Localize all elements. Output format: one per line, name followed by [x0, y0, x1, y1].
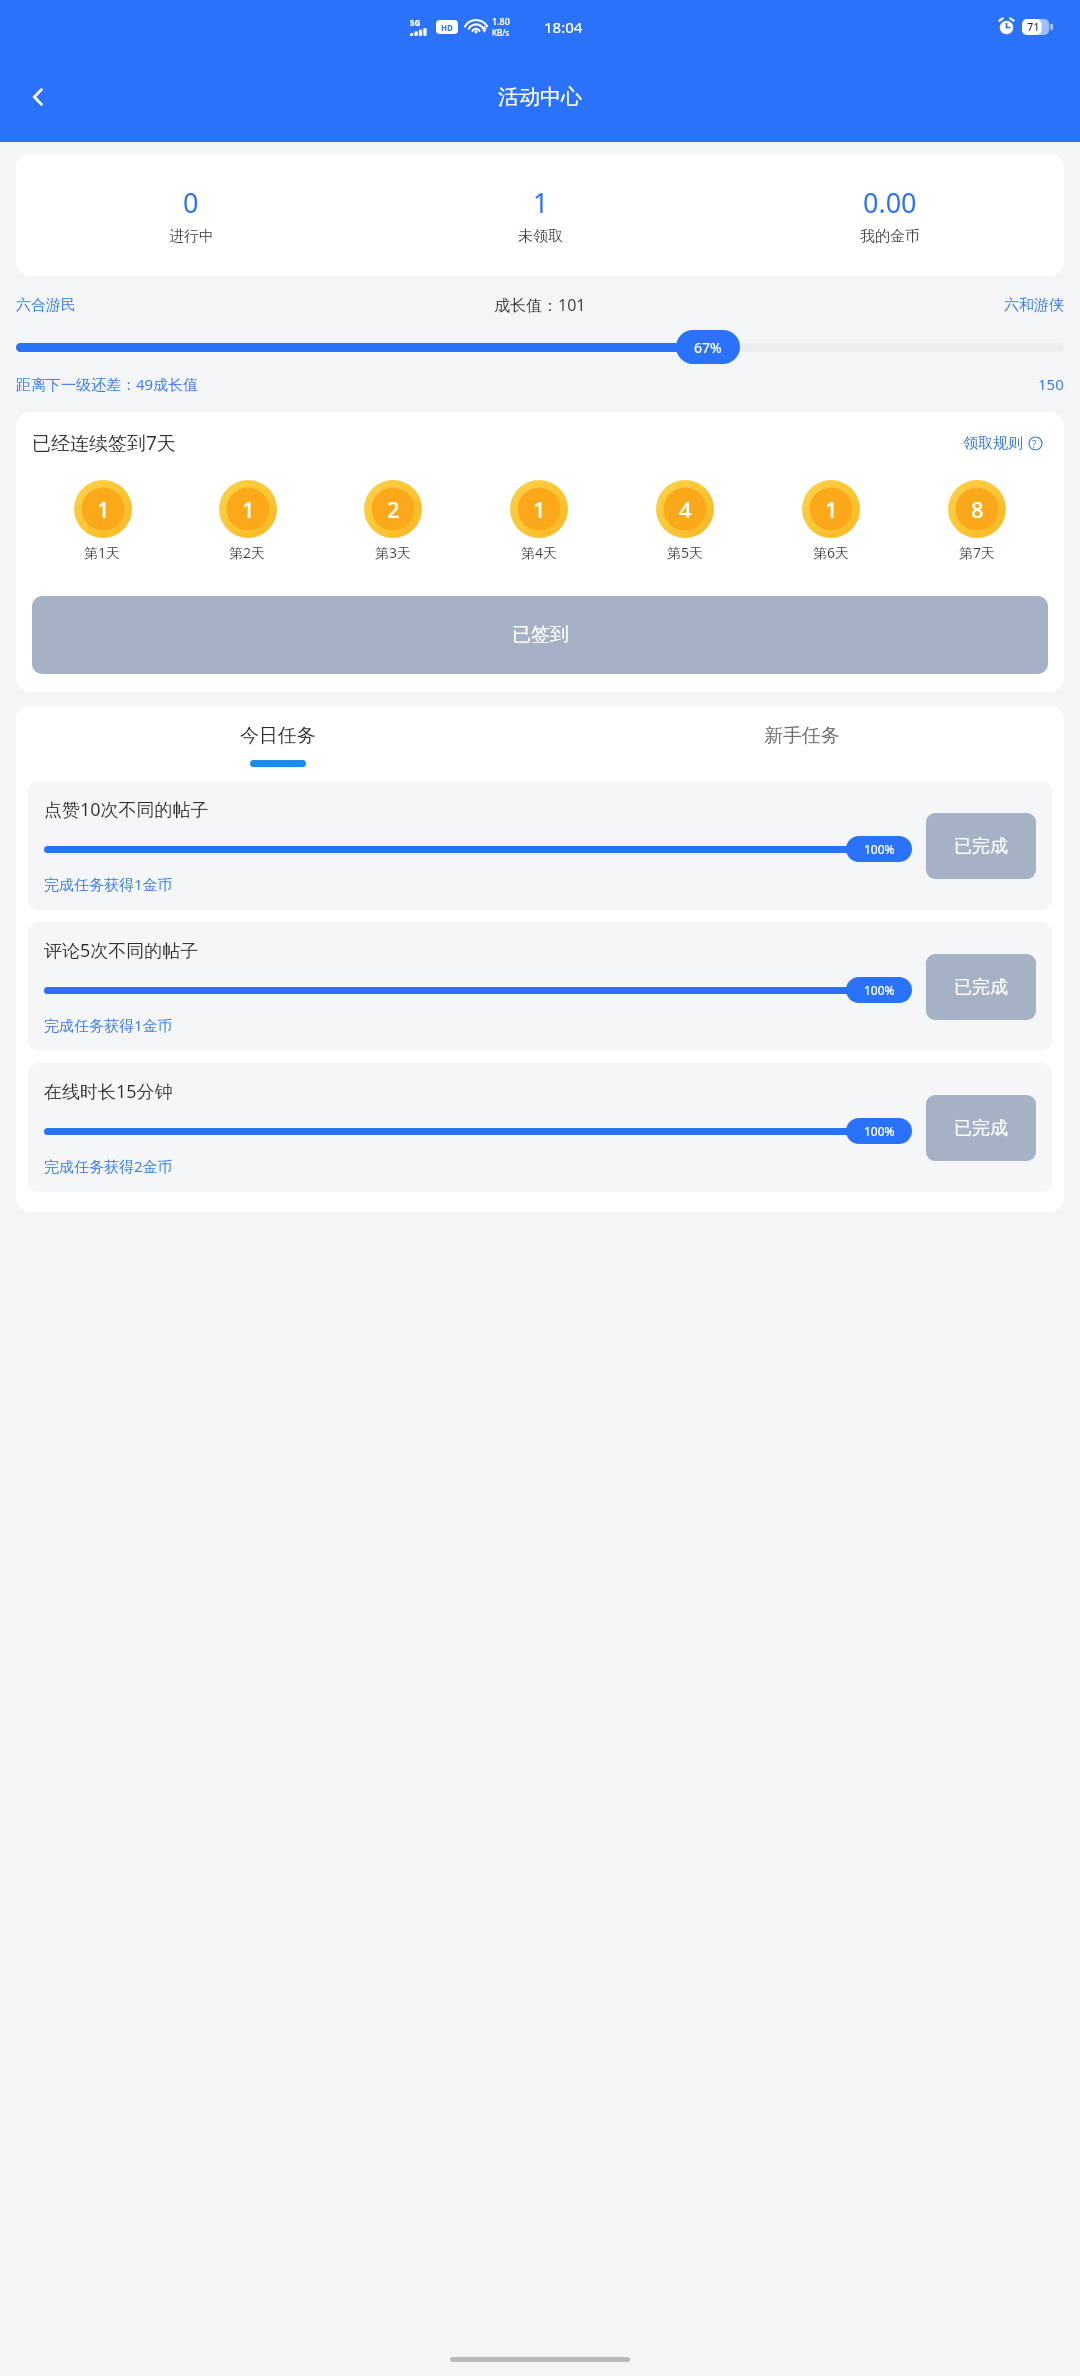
- button[interactable]: 0.00: [715, 184, 1064, 246]
- staticText: 1: [242, 494, 255, 524]
- button[interactable]: 已完成: [926, 813, 1036, 879]
- staticText: 2: [387, 494, 400, 524]
- staticText: 距离下一级还差：49成长值: [16, 374, 1038, 394]
- staticText: 已完成: [954, 976, 1008, 999]
- staticText: 第6天: [813, 543, 850, 562]
- staticText: 1.80: [492, 15, 510, 27]
- staticText: 1: [533, 184, 549, 221]
- button[interactable]: 点赞10次不同的帖子: [28, 781, 1052, 910]
- staticText: 0.00: [863, 184, 917, 221]
- button[interactable]: 在线时长15分钟: [28, 1063, 1052, 1192]
- button[interactable]: 已签到: [32, 596, 1048, 674]
- staticText: 第5天: [667, 543, 704, 562]
- staticText: 新手任务: [764, 724, 840, 748]
- staticText: 活动中心: [498, 84, 582, 110]
- staticText: HD: [441, 22, 453, 33]
- staticText: 点赞10次不同的帖子: [44, 797, 209, 822]
- button[interactable]: 2: [322, 472, 464, 570]
- staticText: 完成任务获得1金币: [44, 1015, 173, 1035]
- staticText: 已签到: [512, 623, 569, 647]
- staticText: 六和游侠: [586, 296, 1064, 315]
- button[interactable]: 1: [366, 184, 715, 246]
- staticText: 71: [1027, 19, 1040, 34]
- staticText: 100%: [864, 1123, 895, 1139]
- staticText: 第4天: [521, 543, 558, 562]
- staticText: 今日任务: [240, 724, 316, 748]
- staticText: 18:04: [544, 17, 583, 37]
- staticText: 1: [97, 494, 110, 524]
- button[interactable]: 0: [16, 184, 366, 246]
- button[interactable]: 4: [614, 472, 756, 570]
- staticText: 5G: [410, 17, 421, 28]
- staticText: 已完成: [954, 835, 1008, 858]
- staticText: 已完成: [954, 1117, 1008, 1140]
- staticText: 150: [1038, 374, 1064, 394]
- button[interactable]: 领取规则: [963, 434, 1048, 453]
- staticText: 第2天: [229, 543, 266, 562]
- staticText: 已经连续签到7天: [32, 430, 963, 456]
- button[interactable]: Back: [14, 73, 62, 121]
- button[interactable]: 1: [32, 472, 173, 570]
- staticText: 0: [183, 184, 199, 221]
- staticText: 评论5次不同的帖子: [44, 938, 199, 963]
- staticText: 完成任务获得1金币: [44, 874, 173, 894]
- button[interactable]: 1: [177, 472, 318, 570]
- staticText: 在线时长15分钟: [44, 1079, 173, 1104]
- staticText: 进行中: [169, 227, 214, 246]
- button[interactable]: 8: [906, 472, 1048, 570]
- staticText: 8: [971, 494, 984, 524]
- staticText: 完成任务获得2金币: [44, 1156, 173, 1176]
- staticText: 领取规则: [963, 434, 1023, 453]
- button[interactable]: 1: [468, 472, 610, 570]
- staticText: 100%: [864, 841, 895, 857]
- button[interactable]: 今日任务: [16, 724, 540, 767]
- staticText: 1: [825, 494, 838, 524]
- button[interactable]: 新手任务: [540, 724, 1064, 767]
- staticText: ?: [1032, 437, 1037, 451]
- staticText: 4: [679, 494, 692, 524]
- staticText: 未领取: [518, 227, 563, 246]
- button[interactable]: 已完成: [926, 1095, 1036, 1161]
- staticText: 我的金币: [860, 227, 920, 246]
- staticText: 六合游民: [16, 296, 494, 315]
- button[interactable]: 1: [760, 472, 902, 570]
- staticText: 第1天: [84, 543, 121, 562]
- staticText: 成长值：101: [494, 294, 586, 316]
- staticText: 67%: [694, 338, 722, 357]
- button[interactable]: 已完成: [926, 954, 1036, 1020]
- staticText: KB/s: [492, 27, 510, 38]
- staticText: 第7天: [959, 543, 996, 562]
- staticText: 第3天: [375, 543, 412, 562]
- staticText: 100%: [864, 982, 895, 998]
- button[interactable]: 评论5次不同的帖子: [28, 922, 1052, 1051]
- staticText: 1: [533, 494, 546, 524]
